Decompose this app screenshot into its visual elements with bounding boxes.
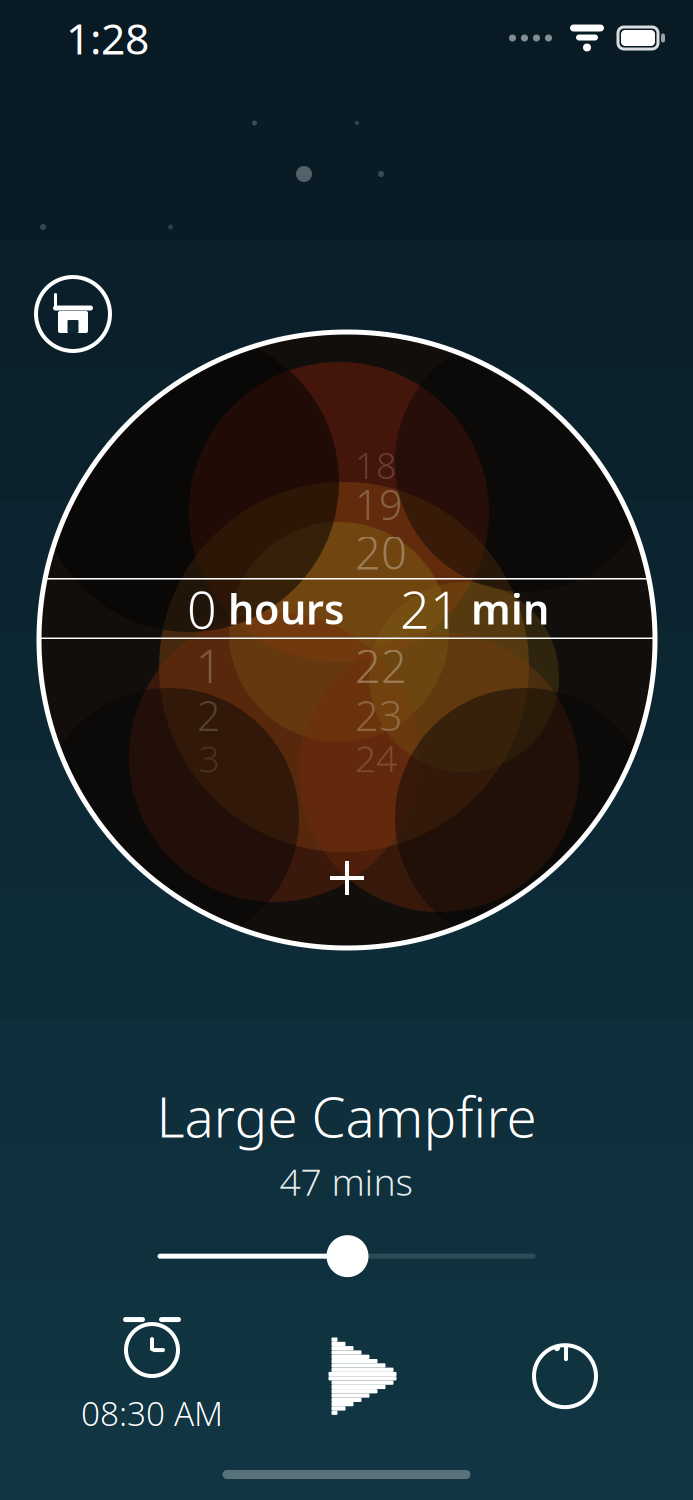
staticText: 20 [355,522,407,582]
staticText: 18 [355,441,397,489]
staticText: 19 [355,477,403,531]
staticText: 22 [355,635,407,696]
button[interactable]: Sleep timer [513,1317,617,1435]
staticText: Large Campfire [156,1080,536,1153]
staticText: min [471,581,549,636]
staticText: hours [228,581,344,636]
staticText: 47 mins [279,1157,413,1206]
staticText: 1 [196,635,222,696]
staticText: 1:28 [66,10,149,66]
button[interactable]: Play [318,1317,422,1435]
staticText: 2 [197,688,221,742]
staticText: 0 [187,574,217,643]
staticText: 08:30 AM [81,1391,223,1435]
staticText: 24 [355,733,397,783]
staticText: 3 [198,733,219,783]
staticText: 21 [400,574,460,643]
button[interactable]: Alarm 08:30 AM [76,1317,228,1435]
button[interactable]: Volume slider [157,1232,535,1280]
button[interactable]: Home [33,274,113,354]
button[interactable]: Add time [309,848,385,908]
staticText: 23 [355,688,403,742]
